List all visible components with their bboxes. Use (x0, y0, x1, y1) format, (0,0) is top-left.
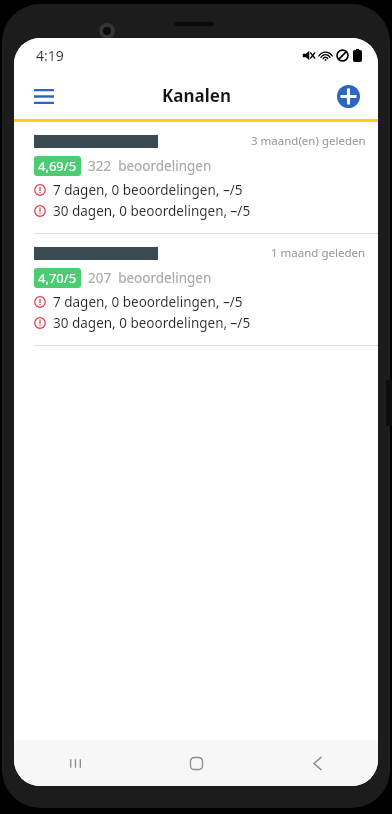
staticText: 4:19 (36, 46, 64, 65)
button[interactable]: Home (136, 740, 257, 786)
button[interactable]: 3 maand(en) geleden (14, 122, 378, 233)
button[interactable]: Recent apps (14, 740, 136, 786)
staticText: 7 dagen, 0 beoordelingen, –/5 (53, 181, 243, 199)
staticText: 30 dagen, 0 beoordelingen, –/5 (53, 202, 251, 220)
staticText: 207 beoordelingen (88, 269, 212, 287)
staticText: 1 maand geleden (271, 245, 366, 261)
staticText: 3 maand(en) geleden (251, 133, 366, 149)
staticText: 4,70/5 (38, 269, 77, 287)
staticText: 7 dagen, 0 beoordelingen, –/5 (53, 293, 243, 311)
button[interactable]: Back (257, 740, 378, 786)
button[interactable]: Open navigation menu (22, 74, 66, 118)
staticText: Kanalen (162, 84, 231, 107)
button[interactable]: 1 maand geleden (14, 234, 378, 345)
staticText: 4,69/5 (38, 157, 77, 175)
staticText: 30 dagen, 0 beoordelingen, –/5 (53, 314, 251, 332)
staticText: 322 beoordelingen (88, 157, 212, 175)
button[interactable]: Add channel (328, 76, 368, 116)
